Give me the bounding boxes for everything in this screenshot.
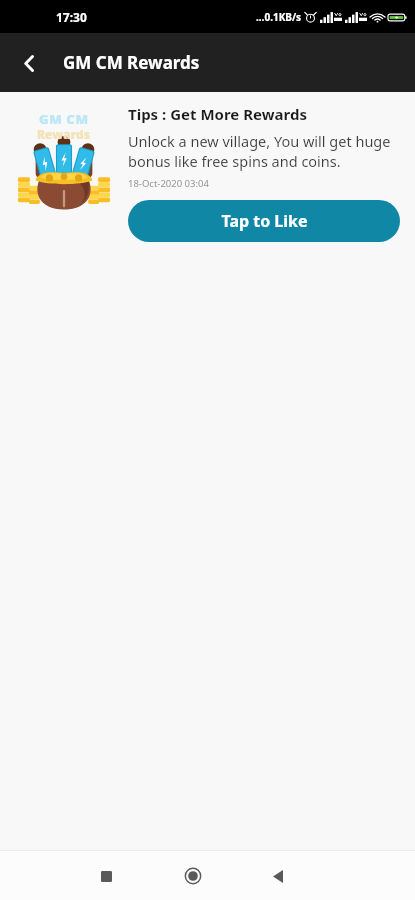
staticText: Tap to Like (221, 210, 308, 232)
staticText: Unlock a new village, You will get huge … (128, 131, 400, 172)
staticText: GM CM Rewards (63, 51, 200, 74)
staticText: 18-Oct-2020 03:04 (128, 177, 209, 190)
button[interactable]: Recent apps (84, 854, 128, 898)
staticText: 17:30 (56, 9, 87, 25)
button[interactable]: Back (6, 40, 52, 86)
button[interactable]: Back (256, 854, 300, 898)
staticText: Tips : Get More Rewards (128, 104, 307, 124)
button[interactable]: Home (171, 854, 215, 898)
staticText: Rewards (37, 126, 91, 142)
staticText: GM CM (39, 110, 89, 128)
staticText: ...0.1KB/s (256, 10, 302, 24)
button[interactable]: Tap to Like (128, 200, 400, 242)
